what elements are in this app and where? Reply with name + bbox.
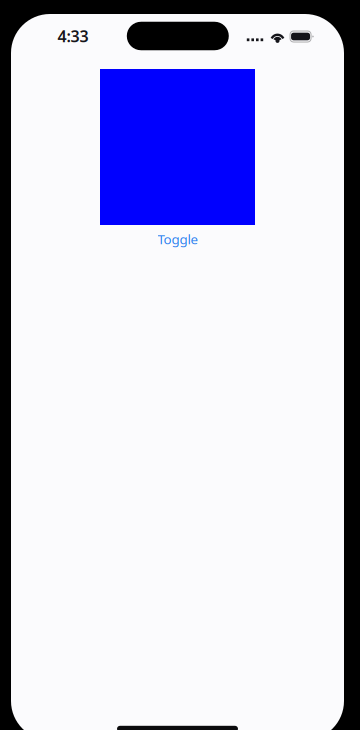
staticText: Toggle — [157, 230, 198, 248]
staticText: 4:33 — [57, 25, 88, 47]
button[interactable]: Toggle — [143, 222, 212, 256]
